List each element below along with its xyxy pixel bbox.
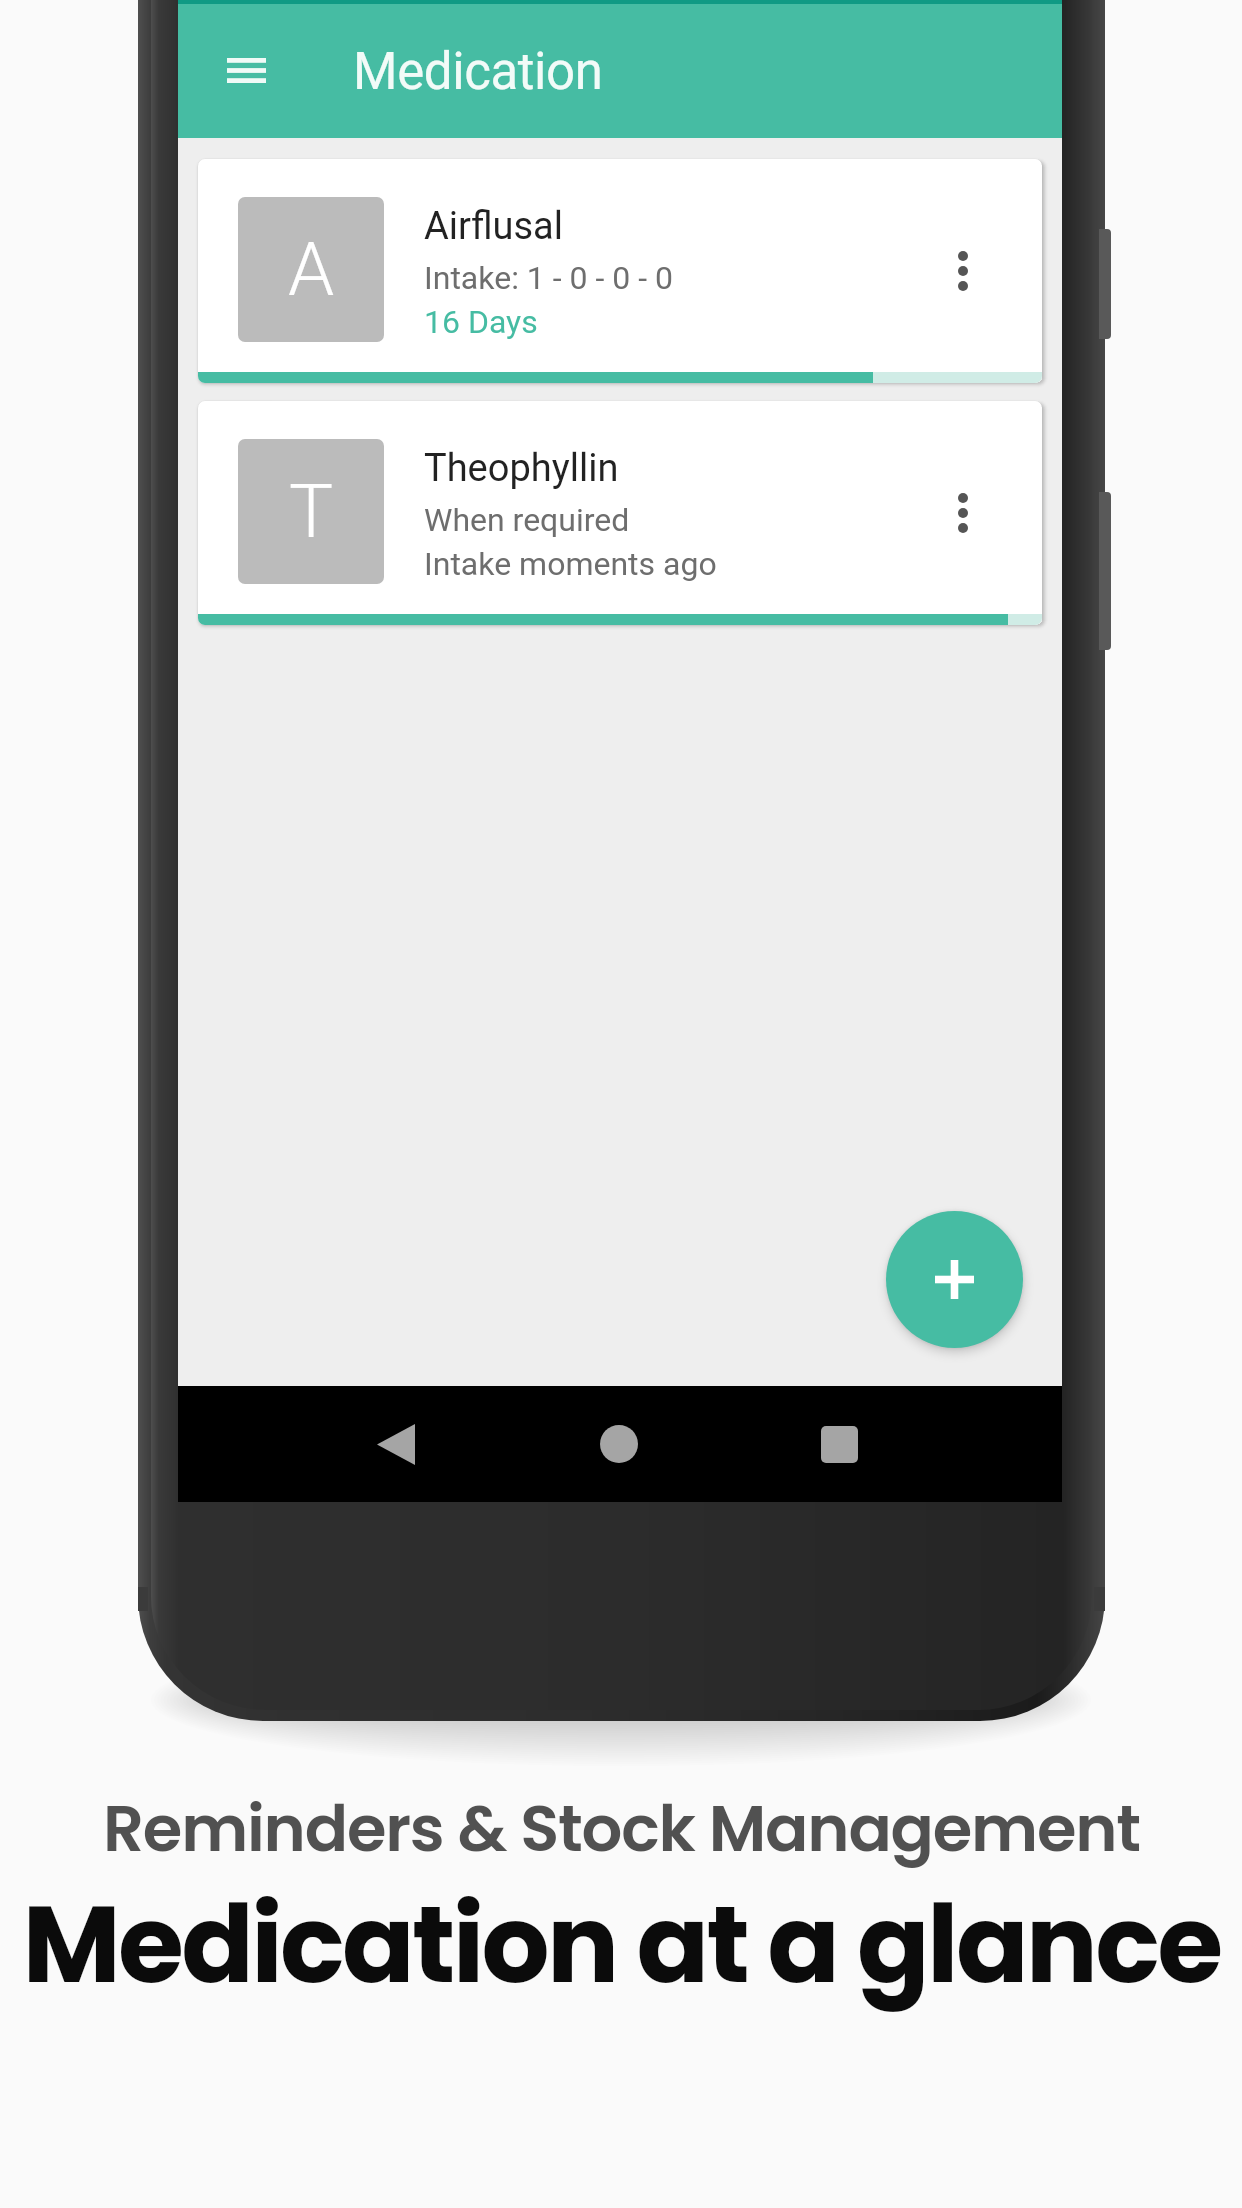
staticText: Medication — [353, 42, 603, 102]
staticText: Intake moments ago — [424, 545, 717, 583]
button[interactable]: Back — [356, 1404, 436, 1484]
staticText: Theophyllin — [424, 446, 619, 491]
staticText: Intake: 1 - 0 - 0 - 0 — [424, 259, 673, 297]
button[interactable]: T — [198, 401, 1042, 625]
staticText: A — [288, 226, 335, 313]
button[interactable]: A — [198, 159, 1042, 383]
button[interactable]: More options for Airflusal — [914, 201, 1012, 341]
button[interactable]: Recent apps — [799, 1404, 879, 1484]
staticText: 16 Days — [424, 303, 538, 341]
staticText: T — [289, 468, 334, 555]
button[interactable]: Open navigation drawer — [192, 15, 300, 123]
staticText: Medication at a glance — [22, 1870, 1221, 2020]
button[interactable]: Home — [579, 1404, 659, 1484]
staticText: Reminders & Stock Management — [103, 1784, 1140, 1874]
staticText: Airflusal — [424, 204, 563, 249]
button[interactable]: Add medication — [886, 1211, 1023, 1348]
staticText: When required — [424, 501, 630, 539]
button[interactable]: More options for Theophyllin — [914, 443, 1012, 583]
